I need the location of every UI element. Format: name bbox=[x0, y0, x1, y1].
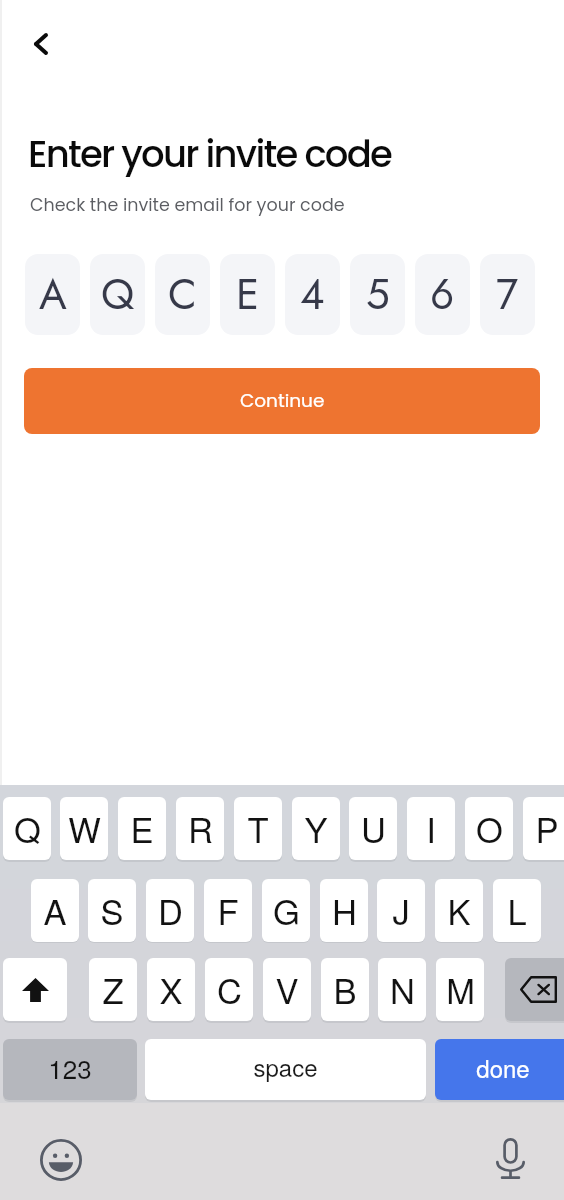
button[interactable]: M bbox=[436, 958, 484, 1021]
staticText: V bbox=[275, 964, 299, 1013]
staticText: E bbox=[130, 803, 154, 852]
staticText: E bbox=[236, 264, 260, 325]
button[interactable]: 5 bbox=[350, 254, 405, 335]
button[interactable]: Emoji bbox=[38, 1137, 84, 1183]
staticText: X bbox=[159, 964, 183, 1013]
staticText: Enter your invite code bbox=[28, 128, 392, 180]
button[interactable]: Shift bbox=[3, 958, 67, 1021]
staticText: P bbox=[535, 803, 559, 852]
staticText: 6 bbox=[430, 264, 455, 325]
button[interactable]: P bbox=[523, 797, 564, 860]
button[interactable]: N bbox=[378, 958, 426, 1021]
staticText: H bbox=[332, 885, 357, 934]
staticText: N bbox=[390, 964, 415, 1013]
staticText: A bbox=[39, 264, 67, 325]
staticText: W bbox=[68, 803, 101, 852]
button[interactable]: Z bbox=[89, 958, 137, 1021]
staticText: 4 bbox=[300, 264, 325, 325]
button[interactable]: O bbox=[465, 797, 513, 860]
button[interactable]: S bbox=[88, 879, 136, 942]
button[interactable]: 4 bbox=[285, 254, 340, 335]
button[interactable]: K bbox=[435, 879, 483, 942]
staticText: T bbox=[247, 803, 269, 852]
button[interactable]: H bbox=[320, 879, 368, 942]
button[interactable]: A bbox=[31, 879, 79, 942]
staticText: 5 bbox=[366, 264, 390, 325]
button[interactable]: Backspace bbox=[505, 958, 564, 1021]
staticText: O bbox=[476, 803, 503, 852]
button[interactable]: Q bbox=[90, 254, 145, 335]
staticText: 7 bbox=[496, 264, 519, 325]
button[interactable]: J bbox=[377, 879, 425, 942]
button[interactable]: done bbox=[435, 1039, 564, 1100]
button[interactable]: Q bbox=[3, 797, 51, 860]
staticText: G bbox=[273, 885, 300, 934]
staticText: done bbox=[476, 1050, 530, 1084]
staticText: Z bbox=[102, 964, 124, 1013]
button[interactable]: 6 bbox=[415, 254, 470, 335]
button[interactable]: D bbox=[146, 879, 194, 942]
button[interactable]: Y bbox=[292, 797, 340, 860]
staticText: R bbox=[188, 803, 213, 852]
button[interactable]: X bbox=[147, 958, 195, 1021]
staticText: Q bbox=[14, 803, 41, 852]
staticText: I bbox=[426, 803, 436, 852]
staticText: J bbox=[392, 885, 410, 934]
button[interactable]: L bbox=[493, 879, 541, 942]
staticText: F bbox=[217, 885, 239, 934]
staticText: D bbox=[158, 885, 183, 934]
button[interactable]: A bbox=[25, 254, 80, 335]
button[interactable]: 123 bbox=[3, 1039, 137, 1100]
staticText: Q bbox=[101, 264, 135, 325]
staticText: C bbox=[217, 964, 242, 1013]
staticText: space bbox=[253, 1049, 318, 1083]
button[interactable]: Continue bbox=[24, 368, 540, 434]
button[interactable]: C bbox=[205, 958, 253, 1021]
staticText: L bbox=[507, 885, 527, 934]
button[interactable]: B bbox=[321, 958, 369, 1021]
staticText: 123 bbox=[48, 1049, 92, 1086]
button[interactable]: U bbox=[349, 797, 397, 860]
button[interactable]: W bbox=[60, 797, 108, 860]
staticText: B bbox=[333, 964, 357, 1013]
button[interactable]: E bbox=[118, 797, 166, 860]
button[interactable]: Voice input bbox=[487, 1136, 533, 1182]
staticText: Continue bbox=[240, 388, 325, 414]
button[interactable]: space bbox=[145, 1039, 426, 1100]
staticText: A bbox=[43, 885, 67, 934]
button[interactable]: V bbox=[263, 958, 311, 1021]
staticText: S bbox=[100, 885, 124, 934]
staticText: U bbox=[361, 803, 386, 852]
button[interactable]: R bbox=[176, 797, 224, 860]
staticText: M bbox=[446, 964, 475, 1013]
button[interactable]: G bbox=[262, 879, 310, 942]
button[interactable]: E bbox=[220, 254, 275, 335]
staticText: Check the invite email for your code bbox=[30, 193, 345, 218]
staticText: C bbox=[168, 264, 197, 325]
staticText: Y bbox=[304, 803, 328, 852]
button[interactable]: F bbox=[204, 879, 252, 942]
staticText: K bbox=[447, 885, 471, 934]
button[interactable]: T bbox=[234, 797, 282, 860]
button[interactable]: C bbox=[155, 254, 210, 335]
button[interactable]: I bbox=[407, 797, 455, 860]
button[interactable]: Back bbox=[17, 20, 64, 68]
button[interactable]: 7 bbox=[480, 254, 535, 335]
